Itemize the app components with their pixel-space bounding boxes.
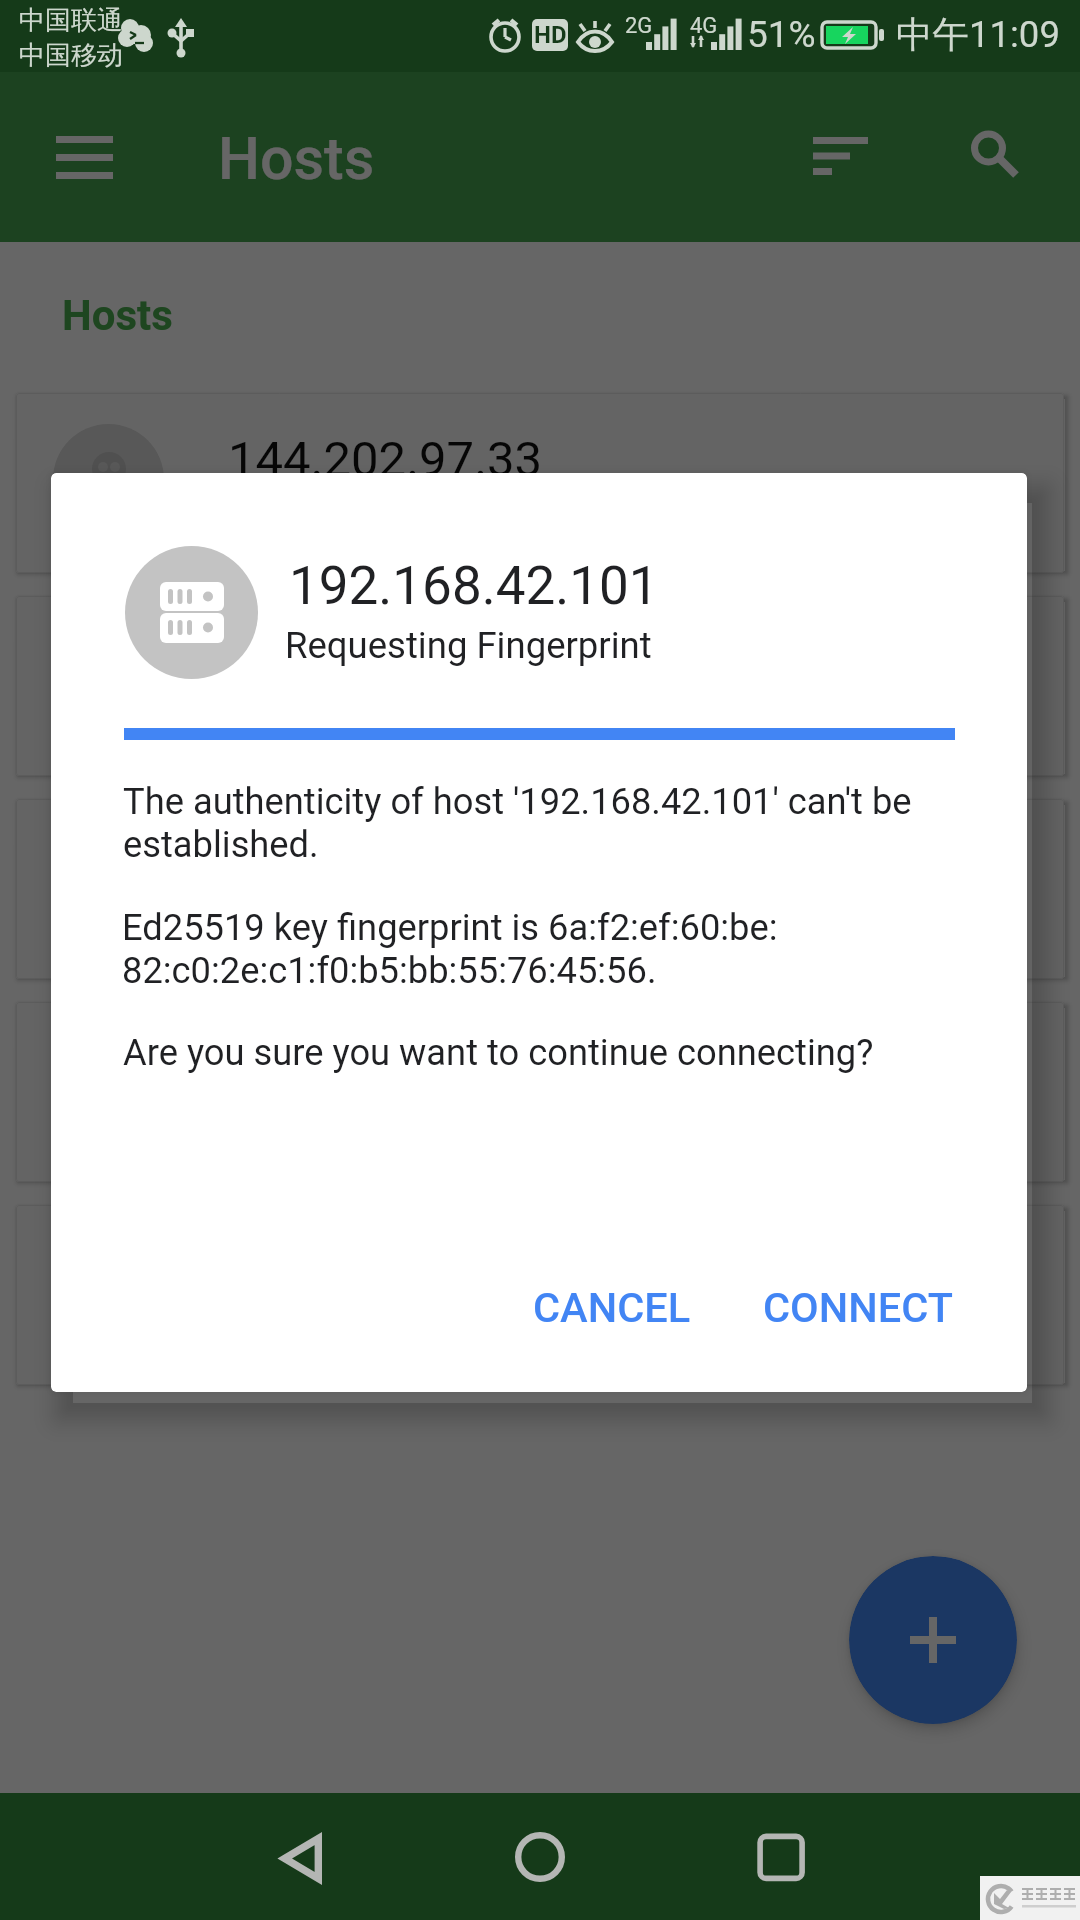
staticText: 192.168.42.101 bbox=[289, 555, 659, 617]
staticText: 144.202.97.33 bbox=[228, 431, 543, 488]
button[interactable]: Add host bbox=[849, 1556, 1017, 1724]
staticText: 2G bbox=[625, 13, 653, 39]
button[interactable]: Open navigation drawer bbox=[40, 113, 128, 201]
staticText: 10.0.0.14 bbox=[228, 837, 432, 894]
button[interactable]: CANCEL bbox=[509, 1267, 715, 1348]
button[interactable]: 144.202.97.33 bbox=[16, 393, 1064, 573]
button[interactable]: Back bbox=[244, 1793, 356, 1905]
staticText: Are you sure you want to continue connec… bbox=[123, 1031, 874, 1074]
button[interactable]: Search bbox=[942, 109, 1038, 205]
button[interactable]: 45.77.12.9 bbox=[16, 1205, 1064, 1385]
staticText: 中国移动 bbox=[19, 39, 123, 72]
button[interactable]: Sort bbox=[792, 109, 888, 205]
staticText: 4G bbox=[690, 13, 718, 39]
staticText: dev.example.com bbox=[228, 1040, 611, 1097]
button[interactable]: Recent apps bbox=[724, 1793, 836, 1905]
staticText: 51% bbox=[747, 13, 816, 56]
staticText: CANCEL bbox=[533, 1283, 691, 1332]
staticText: HD bbox=[534, 21, 567, 49]
staticText: Ed25519 key fingerprint is 6a:f2:ef:60:b… bbox=[122, 906, 778, 992]
button[interactable]: 10.0.0.14 bbox=[16, 799, 1064, 979]
button[interactable]: CONNECT bbox=[739, 1267, 977, 1348]
staticText: The authenticity of host '192.168.42.101… bbox=[123, 780, 968, 866]
staticText: 中国联通 bbox=[19, 4, 123, 37]
staticText: Hosts bbox=[218, 124, 375, 193]
staticText: 192.168.42.101 bbox=[228, 634, 570, 691]
staticText: Hosts bbox=[62, 291, 173, 340]
button[interactable]: dev.example.com bbox=[16, 1002, 1064, 1182]
staticText: CONNECT bbox=[763, 1283, 953, 1332]
staticText: Requesting Fingerprint bbox=[285, 624, 652, 667]
staticText: 中午11:09 bbox=[896, 12, 1060, 58]
button[interactable]: Home bbox=[484, 1793, 596, 1905]
button[interactable]: 192.168.42.101 bbox=[16, 596, 1064, 776]
